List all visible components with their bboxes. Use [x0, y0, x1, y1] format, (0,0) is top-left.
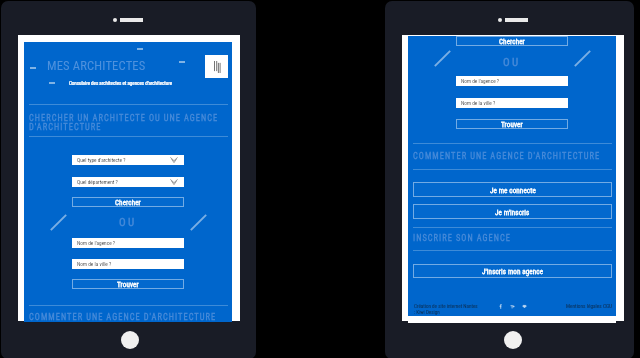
staticText: Consulaire des architectes et agences d'… [69, 80, 173, 86]
button[interactable]: Quel département ? [72, 177, 184, 187]
button[interactable]: Je m'inscris [413, 204, 612, 219]
staticText: Chercher [499, 37, 525, 45]
staticText: Quel département ? [77, 179, 118, 185]
staticText: INSCRIRE SON AGENCE [413, 233, 512, 243]
staticText: J'inscris mon agence [482, 267, 544, 275]
staticText: Nom de l'agence ? [77, 240, 116, 246]
button[interactable]: Logo [205, 55, 228, 78]
staticText: Je m'inscris [495, 208, 530, 216]
staticText: COMMENTER UNE AGENCE D'ARCHITECTURE [413, 151, 601, 161]
button[interactable]: Chercher [456, 36, 568, 46]
staticText: Nom de la ville ? [77, 261, 112, 267]
button[interactable]: Nom de l'agence ? [456, 76, 568, 86]
staticText: Trouver [117, 280, 139, 288]
button[interactable]: Instagram [509, 303, 515, 309]
button[interactable]: Nom de la ville ? [456, 98, 568, 108]
staticText: Nom de la ville ? [461, 100, 496, 106]
staticText: COMMENTER UNE AGENCE D'ARCHITECTURE [29, 312, 217, 322]
button[interactable]: Trouver [72, 279, 184, 289]
staticText: Trouver [501, 120, 523, 128]
button[interactable]: J'inscris mon agence [413, 264, 612, 278]
button[interactable]: Chercher [72, 197, 184, 207]
button[interactable]: Home [121, 331, 139, 349]
staticText: MES ARCHITECTES [47, 58, 146, 73]
staticText: Mentions légales CGU [528, 303, 612, 309]
button[interactable]: Trouver [456, 119, 568, 129]
button[interactable]: Facebook [497, 303, 503, 309]
button[interactable]: Twitter [521, 303, 527, 309]
button[interactable]: Nom de l'agence ? [72, 238, 184, 248]
staticText: OU [503, 56, 521, 69]
staticText: OU [119, 216, 137, 229]
button[interactable]: Quel type d'architecte ? [72, 155, 184, 165]
button[interactable]: Je me connecte [413, 182, 612, 197]
staticText: Chercher [115, 198, 141, 206]
staticText: Je me connecte [490, 186, 536, 194]
staticText: CHERCHER UN ARCHITECTE OU UNE AGENCE D'A… [29, 113, 219, 132]
button[interactable]: Home [504, 331, 522, 349]
staticText: Nom de l'agence ? [461, 78, 500, 84]
staticText: Création de site internet Nantes : Kiwi … [414, 303, 478, 315]
button[interactable]: Nom de la ville ? [72, 259, 184, 269]
staticText: Quel type d'architecte ? [77, 157, 126, 163]
